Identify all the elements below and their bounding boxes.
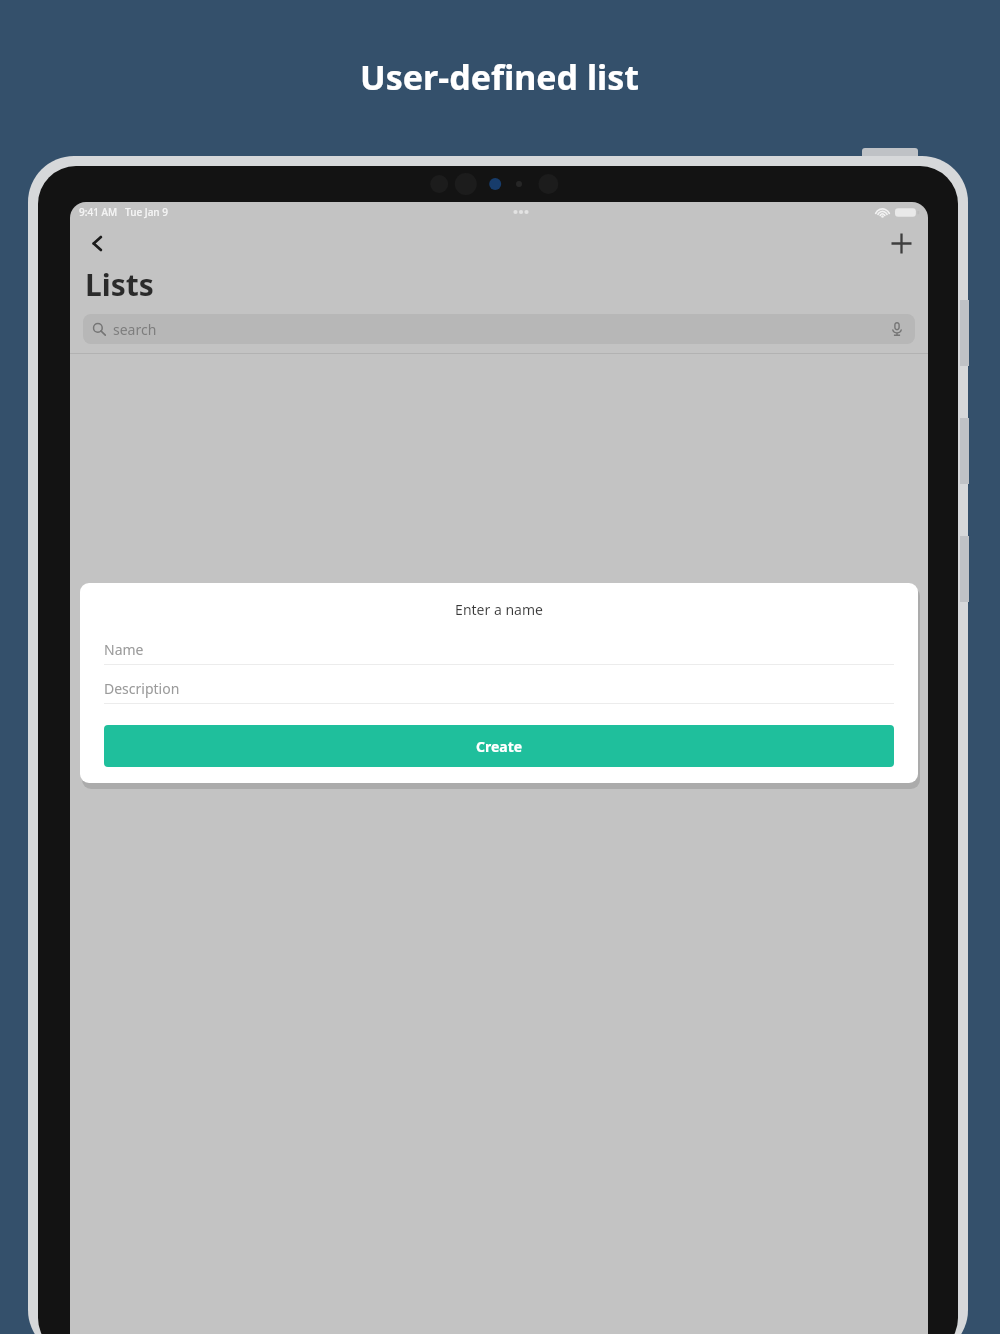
staticText: Name [104, 640, 144, 659]
staticText: User-defined list [360, 54, 640, 100]
staticText: Description [104, 679, 180, 698]
staticText: Lists [85, 264, 154, 305]
staticText: 9:41 AM Tue Jan 9 [79, 205, 168, 219]
button[interactable]: Description [104, 674, 894, 713]
staticText: Enter a name [455, 600, 543, 619]
button[interactable]: Name [104, 635, 894, 674]
staticText: Create [476, 737, 523, 756]
staticText: search [113, 320, 157, 339]
button[interactable]: search [83, 314, 915, 344]
button[interactable]: Add list [882, 224, 920, 262]
button[interactable]: Back [78, 224, 116, 262]
button[interactable]: Create [104, 725, 894, 767]
button[interactable]: Voice search [888, 320, 906, 338]
